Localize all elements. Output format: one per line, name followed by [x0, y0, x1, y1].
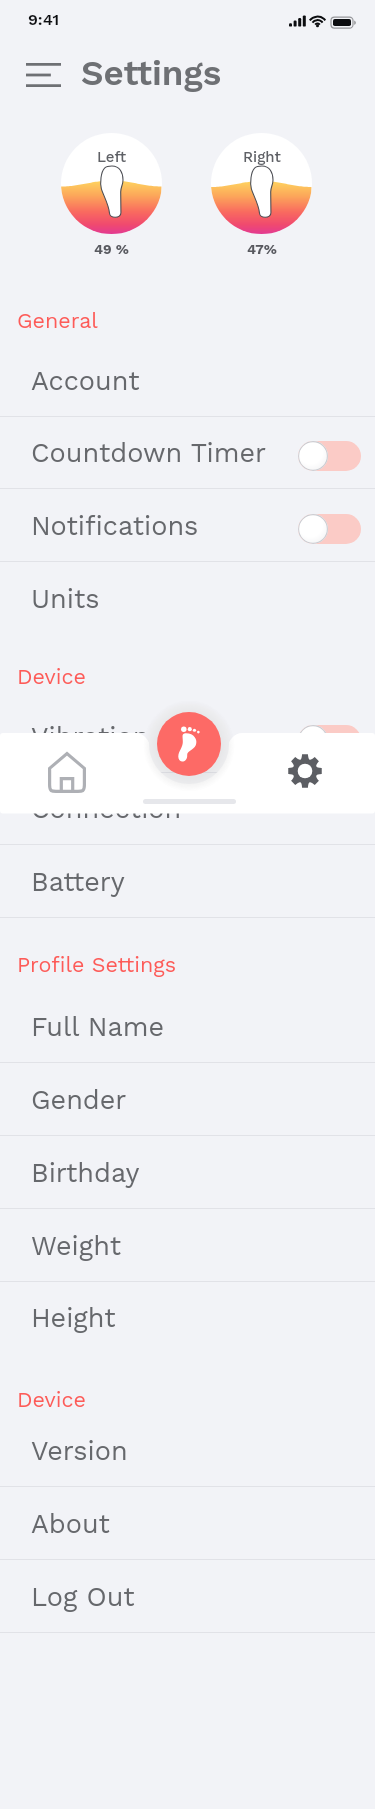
button[interactable]: Height [0, 1281, 375, 1354]
staticText: Countdown Timer [31, 437, 267, 469]
button[interactable]: Toggle Countdown Timer [298, 441, 361, 471]
staticText: Right [243, 148, 281, 166]
staticText: Version [31, 1435, 128, 1467]
button[interactable]: Gender [0, 1063, 375, 1136]
button[interactable]: Notifications [0, 489, 375, 562]
button[interactable]: Account [0, 344, 375, 417]
button[interactable]: Countdown Timer [0, 416, 375, 489]
staticText: Account [31, 365, 140, 397]
button[interactable]: Weight [0, 1209, 375, 1282]
button[interactable]: Birthday [0, 1136, 375, 1209]
button[interactable]: Home [47, 751, 86, 793]
button[interactable]: Version [0, 1414, 375, 1487]
button[interactable]: Toggle Vibration [298, 725, 361, 755]
button[interactable]: Toggle Notifications [298, 514, 361, 544]
staticText: Log Out [31, 1581, 135, 1613]
staticText: Connection [31, 793, 182, 825]
staticText: General [17, 308, 98, 333]
staticText: Height [31, 1302, 116, 1334]
button[interactable]: Log Out [0, 1560, 375, 1633]
staticText: Units [31, 583, 100, 615]
staticText: Left [97, 148, 127, 166]
staticText: Birthday [31, 1157, 140, 1189]
button[interactable]: Connection [0, 772, 375, 845]
button[interactable]: Units [0, 562, 375, 635]
staticText: Profile Settings [17, 952, 177, 977]
button[interactable]: Vibration [0, 700, 375, 773]
staticText: Weight [31, 1230, 121, 1262]
staticText: Notifications [31, 510, 199, 542]
staticText: 47% [247, 241, 277, 257]
staticText: Vibration [31, 721, 150, 753]
button[interactable]: Full Name [0, 990, 375, 1063]
staticText: 9:41 [28, 10, 60, 29]
staticText: Device [17, 1387, 86, 1412]
button[interactable]: Battery [0, 845, 375, 918]
button[interactable]: Menu [14, 52, 72, 98]
staticText: Full Name [31, 1011, 165, 1043]
staticText: Device [17, 664, 86, 689]
staticText: 49 % [94, 241, 129, 257]
staticText: Settings [81, 52, 222, 93]
staticText: Battery [31, 866, 125, 898]
button[interactable]: Settings [287, 753, 322, 788]
staticText: Gender [31, 1084, 127, 1116]
button[interactable]: Footprint [157, 712, 221, 776]
staticText: About [31, 1508, 110, 1540]
button[interactable]: About [0, 1487, 375, 1560]
